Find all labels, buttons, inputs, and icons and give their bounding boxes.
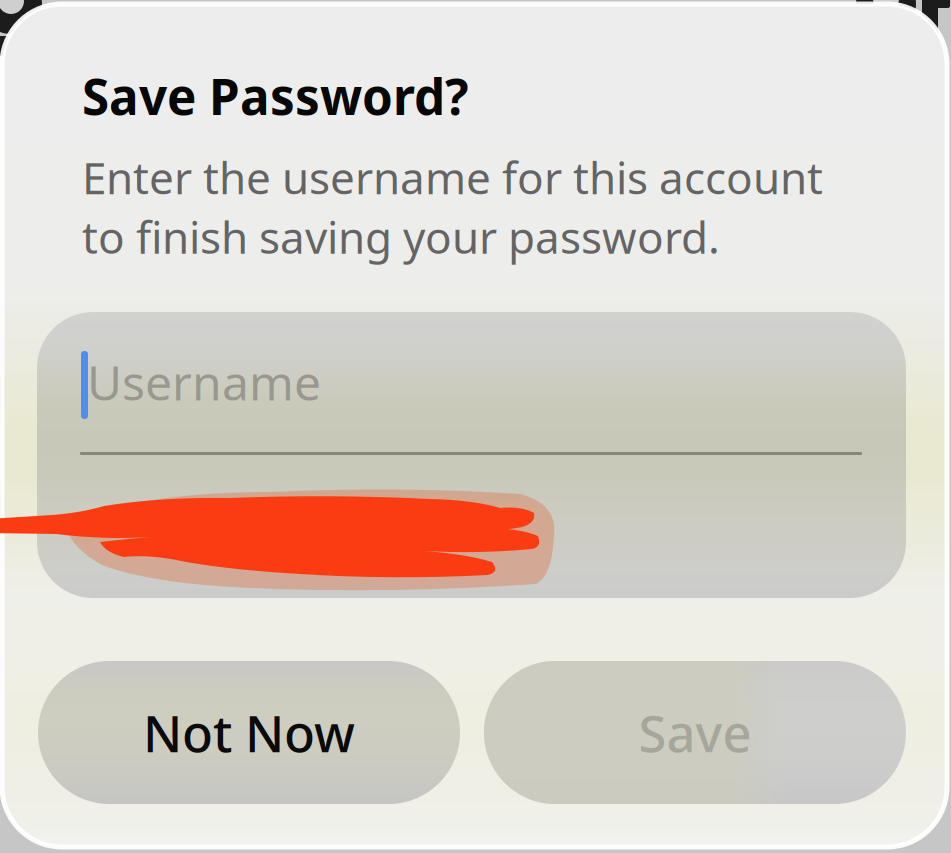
button[interactable]: Save xyxy=(484,661,906,804)
staticText: Save Password? xyxy=(82,63,469,128)
staticText: Username xyxy=(87,350,321,414)
button[interactable]: Not Now xyxy=(38,661,460,804)
staticText: Enter the username for this account xyxy=(82,148,823,206)
staticText: Save xyxy=(638,699,751,766)
staticText: to finish saving your password. xyxy=(82,207,720,266)
staticText: Not Now xyxy=(143,699,355,766)
